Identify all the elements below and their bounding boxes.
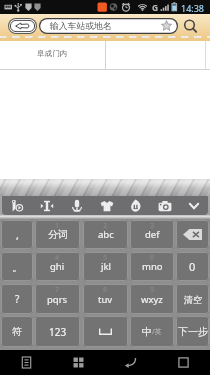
staticText: G bbox=[152, 2, 159, 14]
button[interactable]: Move cursor bbox=[32, 196, 62, 215]
button[interactable]: 0 bbox=[176, 252, 209, 281]
button[interactable]: 分词 bbox=[35, 220, 80, 249]
button[interactable]: Home bbox=[157, 350, 210, 375]
button[interactable]: jkl bbox=[83, 252, 128, 281]
staticText: /英 bbox=[152, 327, 162, 337]
button[interactable]: 中 bbox=[130, 316, 174, 347]
staticText: 2 bbox=[103, 221, 108, 231]
staticText: tuv bbox=[98, 293, 113, 306]
staticText: 中 bbox=[142, 325, 152, 338]
button[interactable] bbox=[176, 220, 209, 249]
button[interactable]: 。 bbox=[1, 252, 33, 281]
button[interactable]: 123 bbox=[35, 316, 80, 347]
staticText: 下一步 bbox=[178, 325, 208, 338]
button[interactable]: ? bbox=[1, 284, 33, 314]
button[interactable]: wxyz bbox=[130, 284, 174, 314]
staticText: abc bbox=[98, 228, 114, 241]
button[interactable]: pqrs bbox=[35, 284, 80, 314]
button[interactable]: Menu bbox=[0, 350, 52, 375]
staticText: 0 bbox=[189, 259, 196, 274]
button[interactable]: Voice input bbox=[62, 196, 92, 215]
staticText: 6 bbox=[150, 253, 155, 263]
button[interactable]: mno bbox=[130, 252, 174, 281]
staticText: 3 bbox=[150, 221, 155, 231]
staticText: pqrs bbox=[47, 293, 68, 306]
button[interactable]: Back bbox=[104, 350, 157, 375]
staticText: 4 bbox=[55, 253, 60, 263]
button[interactable]: Search bbox=[181, 18, 201, 35]
staticText: 输入车站或地名 bbox=[50, 21, 112, 32]
button[interactable]: Camera bbox=[150, 196, 179, 215]
staticText: 9 bbox=[150, 285, 155, 295]
staticText: 符 bbox=[12, 325, 22, 338]
staticText: ghi bbox=[50, 260, 65, 273]
staticText: 123 bbox=[49, 325, 67, 339]
button[interactable]: 下一步 bbox=[176, 316, 209, 347]
staticText: 清空 bbox=[184, 294, 202, 305]
staticText: 阜成门内 bbox=[37, 49, 68, 59]
staticText: def bbox=[145, 228, 160, 241]
button[interactable]: Sogou input bbox=[2, 196, 32, 215]
button[interactable]: def bbox=[130, 220, 174, 249]
button[interactable]: Skin bbox=[92, 196, 121, 215]
staticText: , bbox=[16, 227, 19, 242]
button[interactable]: 清空 bbox=[176, 284, 209, 314]
staticText: 7 bbox=[55, 285, 60, 295]
staticText: 5 bbox=[103, 253, 108, 263]
button[interactable] bbox=[83, 316, 128, 347]
staticText: ? bbox=[15, 292, 20, 306]
staticText: 8 bbox=[103, 285, 108, 295]
staticText: 。 bbox=[12, 260, 23, 274]
button[interactable]: , bbox=[1, 220, 33, 249]
staticText: jkl bbox=[101, 260, 111, 273]
button[interactable]: Expression bbox=[121, 196, 150, 215]
button[interactable]: ghi bbox=[35, 252, 80, 281]
button[interactable]: abc bbox=[83, 220, 128, 249]
button[interactable]: Hide keyboard bbox=[179, 196, 208, 215]
button[interactable]: Back bbox=[8, 18, 37, 34]
button[interactable]: 输入车站或地名 bbox=[39, 18, 178, 34]
staticText: wxyz bbox=[141, 293, 163, 306]
staticText: 14:38 bbox=[181, 2, 205, 14]
button[interactable]: tuv bbox=[83, 284, 128, 314]
button[interactable]: 阜成门内 bbox=[0, 41, 105, 69]
staticText: 1 bbox=[55, 221, 60, 231]
button[interactable]: 符 bbox=[1, 316, 33, 347]
staticText: 分词 bbox=[48, 228, 68, 241]
staticText: mno bbox=[142, 260, 163, 273]
button[interactable]: Recent apps bbox=[52, 350, 104, 375]
